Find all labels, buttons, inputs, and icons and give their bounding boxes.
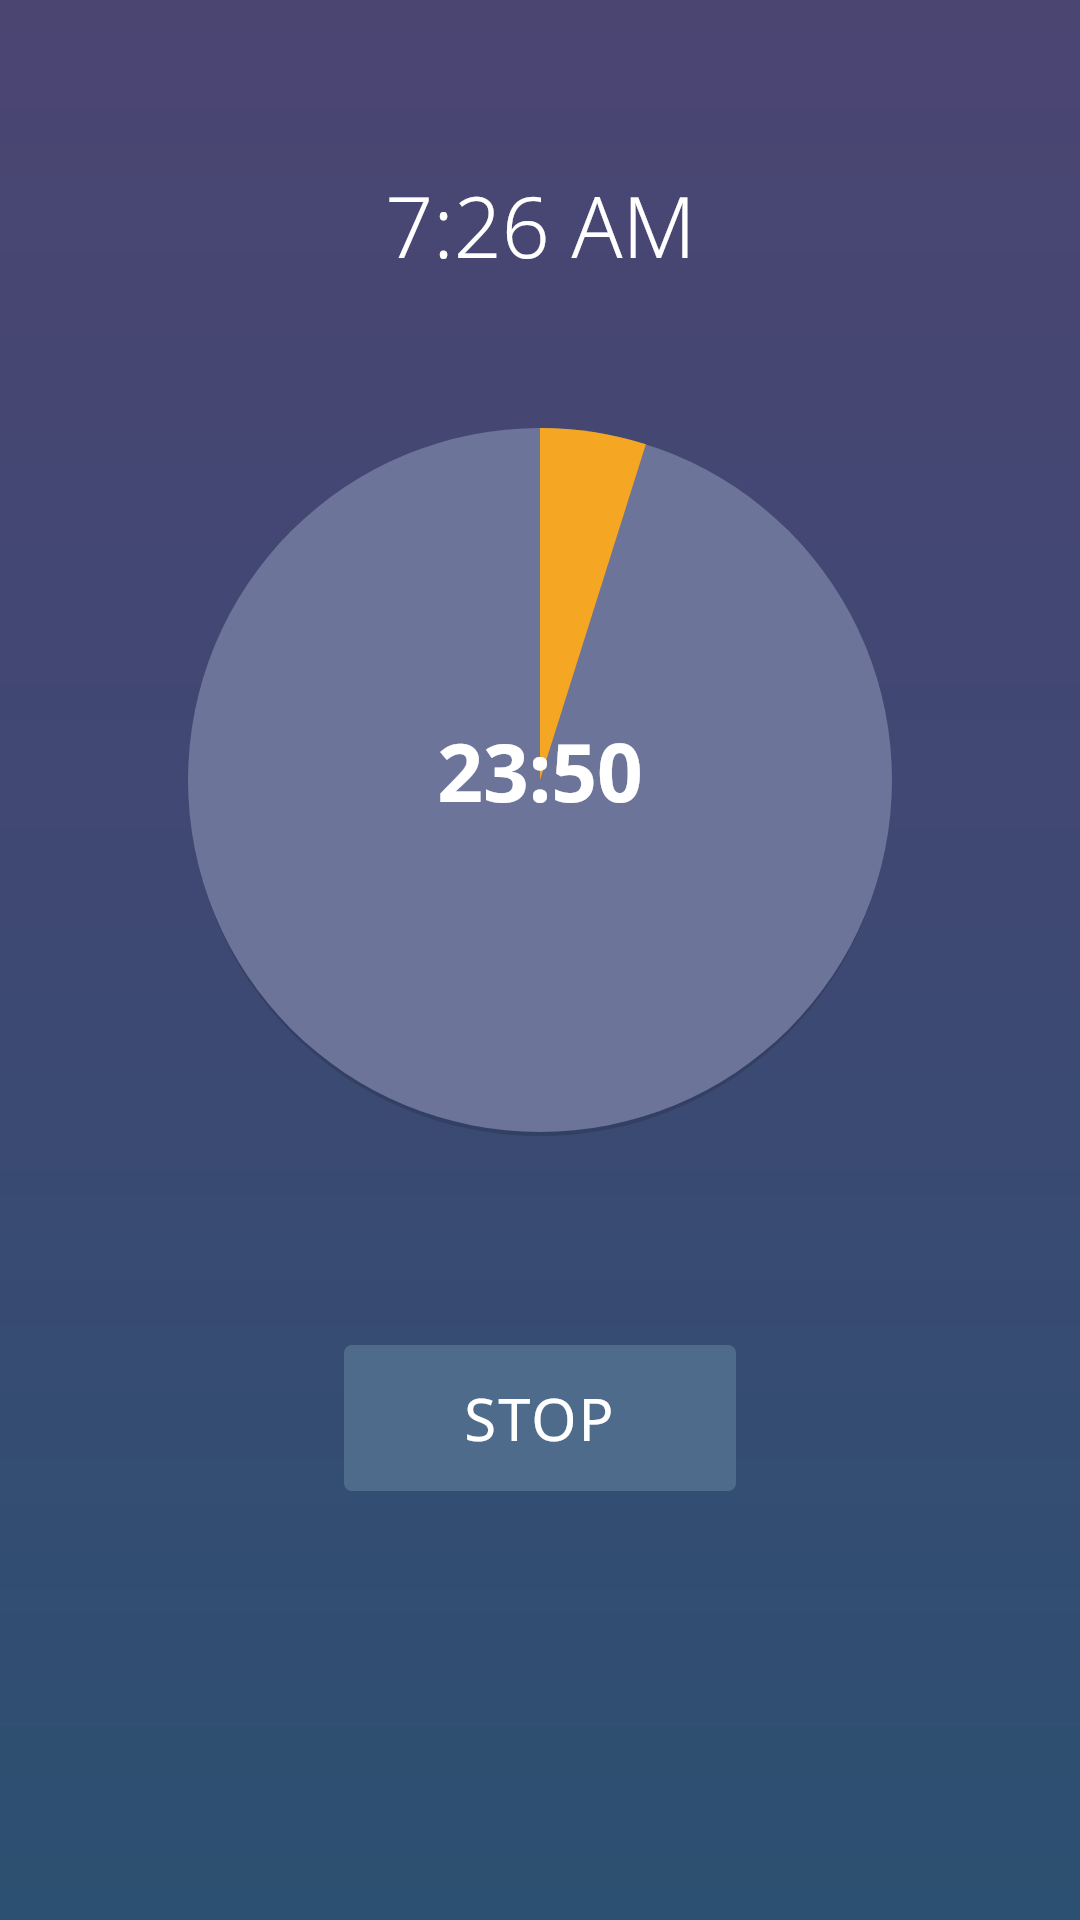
- button[interactable]: STOP: [344, 1345, 736, 1491]
- staticText: 7:26 AM: [385, 168, 696, 282]
- staticText: STOP: [464, 1379, 616, 1458]
- staticText: 23:50: [437, 716, 643, 825]
